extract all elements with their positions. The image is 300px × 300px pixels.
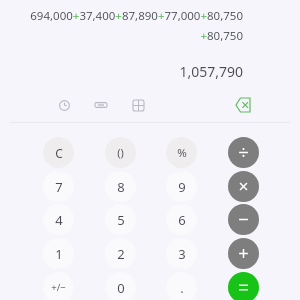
- button[interactable]: Equals: [228, 272, 259, 300]
- button[interactable]: Backspace: [234, 96, 252, 114]
- staticText: 3: [178, 245, 186, 263]
- staticText: 6: [178, 211, 186, 229]
- staticText: 5: [117, 211, 125, 229]
- button[interactable]: Divide: [228, 137, 259, 168]
- staticText: 4: [55, 211, 63, 229]
- button[interactable]: History: [55, 96, 73, 114]
- button[interactable]: %: [166, 137, 197, 168]
- button[interactable]: Multiply: [228, 171, 259, 202]
- staticText: 8: [117, 178, 125, 196]
- button[interactable]: 1: [43, 238, 74, 269]
- staticText: 7: [55, 178, 63, 196]
- button[interactable]: Unit converter: [129, 96, 147, 114]
- button[interactable]: Add: [228, 238, 259, 269]
- button[interactable]: 4: [43, 204, 74, 235]
- button[interactable]: 3: [166, 238, 197, 269]
- staticText: .: [180, 279, 184, 297]
- staticText: +80,750: [200, 28, 243, 44]
- button[interactable]: 0: [105, 272, 136, 300]
- button[interactable]: 6: [166, 204, 197, 235]
- staticText: 1,057,790: [179, 62, 243, 81]
- button[interactable]: (): [105, 137, 136, 168]
- staticText: 694,000+37,400+87,890+77,000+80,750: [30, 8, 243, 24]
- button[interactable]: 8: [105, 171, 136, 202]
- button[interactable]: C: [43, 137, 74, 168]
- button[interactable]: 5: [105, 204, 136, 235]
- staticText: %: [177, 145, 187, 161]
- staticText: 2: [117, 245, 125, 263]
- button[interactable]: +/−: [43, 272, 74, 300]
- staticText: C: [55, 145, 63, 161]
- button[interactable]: 2: [105, 238, 136, 269]
- button[interactable]: 7: [43, 171, 74, 202]
- staticText: 9: [178, 178, 186, 196]
- staticText: 0: [117, 279, 125, 297]
- staticText: +/−: [51, 281, 66, 294]
- button[interactable]: Subtract: [228, 204, 259, 235]
- staticText: (): [117, 145, 124, 160]
- button[interactable]: 9: [166, 171, 197, 202]
- staticText: 1: [55, 245, 63, 263]
- button[interactable]: Keyboard: [92, 96, 110, 114]
- button[interactable]: .: [166, 272, 197, 300]
